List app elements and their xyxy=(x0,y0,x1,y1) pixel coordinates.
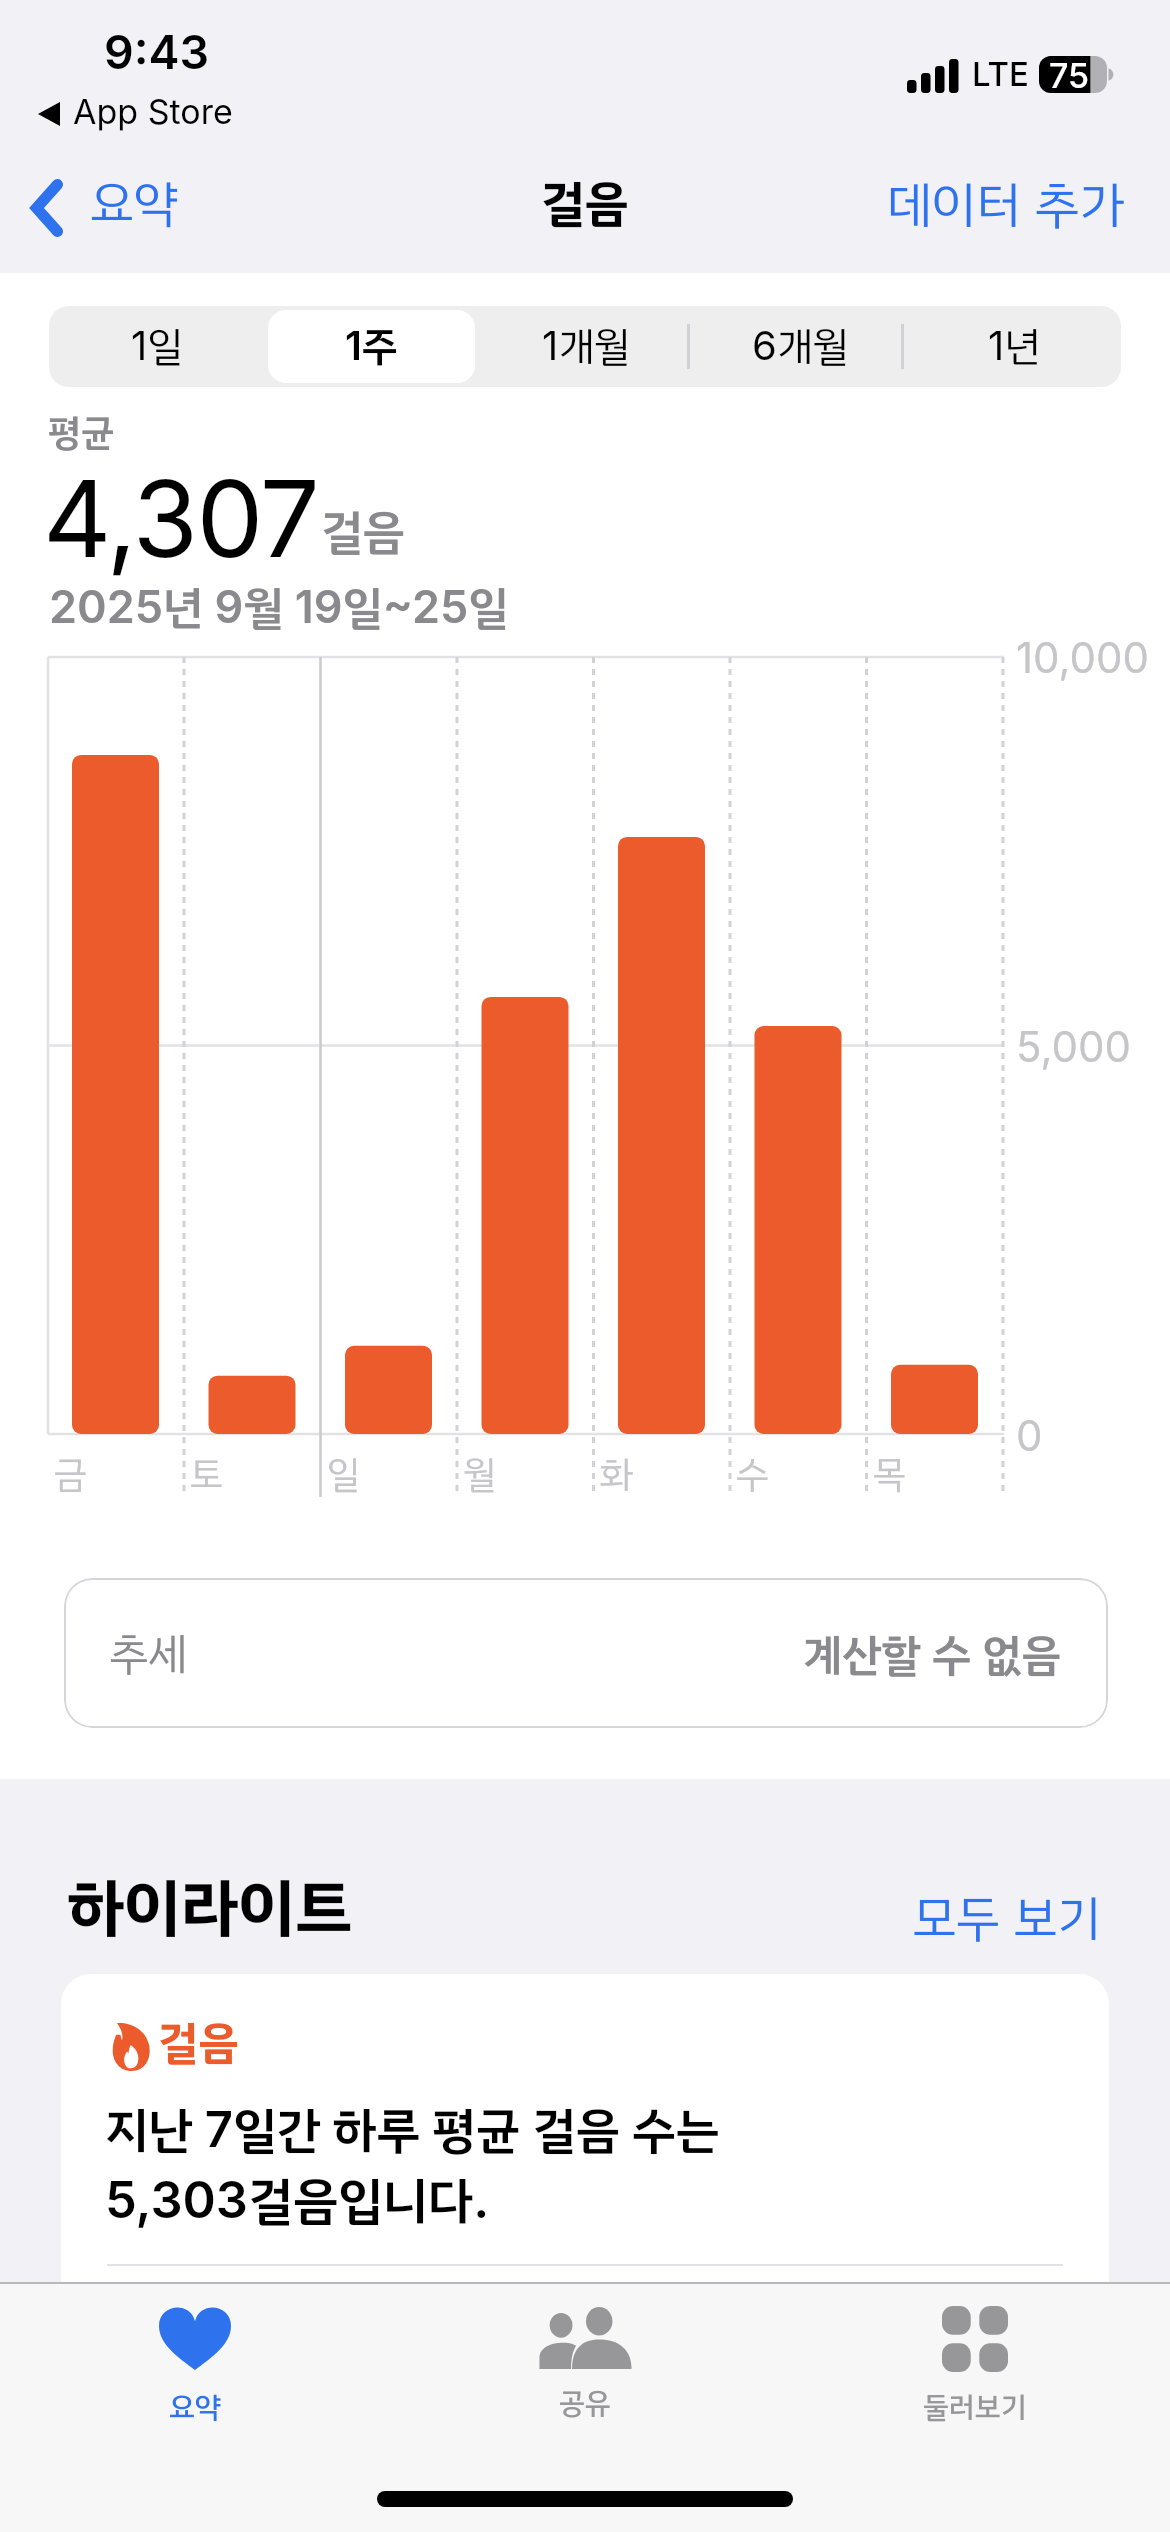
staticText: 10,000 xyxy=(1016,632,1150,683)
staticText: 계산할 수 없음 xyxy=(803,1622,1061,1688)
staticText: 지난 7일간 하루 평균 걸음 수는 xyxy=(105,2094,720,2168)
staticText: 일 xyxy=(327,1447,361,1503)
button[interactable]: 1년 xyxy=(907,306,1121,387)
staticText: 9:43 xyxy=(104,24,210,80)
staticText: 월 xyxy=(463,1447,497,1503)
button[interactable]: 6개월 xyxy=(693,306,907,387)
staticText: 둘러보기 xyxy=(923,2386,1027,2430)
staticText: 하이라이트 xyxy=(67,1861,353,1957)
staticText: App Store xyxy=(73,91,233,132)
other: 둘러보기 xyxy=(942,2306,1008,2372)
staticText: 걸음 xyxy=(321,497,405,568)
staticText: 추세 xyxy=(109,1621,188,1687)
staticText: 1일 xyxy=(131,317,183,377)
button[interactable]: 공유 xyxy=(390,2282,780,2452)
staticText: 모두 보기 xyxy=(857,1882,1101,1956)
staticText: 토 xyxy=(190,1447,224,1503)
staticText: 평균 xyxy=(48,405,115,461)
button[interactable]: 1개월 xyxy=(479,306,693,387)
staticText: 화 xyxy=(600,1447,634,1503)
staticText: 목 xyxy=(873,1447,907,1503)
staticText: 금 xyxy=(54,1447,88,1503)
staticText: 1개월 xyxy=(542,317,630,377)
button[interactable]: 요약 xyxy=(30,171,178,245)
button[interactable]: 추세 xyxy=(64,1578,1108,1728)
staticText: 4,307 xyxy=(43,454,319,582)
staticText: 1주 xyxy=(345,317,398,377)
button[interactable]: 둘러보기 xyxy=(780,2282,1170,2452)
staticText: 공유 xyxy=(559,2382,611,2426)
staticText: 1년 xyxy=(988,317,1040,377)
other: 공유 xyxy=(539,2307,632,2369)
staticText: 요약 xyxy=(90,167,178,241)
staticText: 5,000 xyxy=(1016,1021,1131,1072)
staticText: 6개월 xyxy=(752,317,849,377)
other: 요약 xyxy=(159,2304,231,2370)
button[interactable]: 1주 xyxy=(264,306,479,387)
staticText: 수 xyxy=(736,1447,770,1503)
staticText: 요약 xyxy=(169,2386,221,2430)
button[interactable]: 요약 xyxy=(0,2282,390,2452)
staticText: 2025년 9월 19일~25일 xyxy=(49,574,509,642)
staticText: 걸음 xyxy=(541,167,629,241)
staticText: 걸음 xyxy=(158,2009,239,2077)
button[interactable]: 걸음 xyxy=(61,1974,1109,2284)
staticText: LTE xyxy=(972,54,1029,94)
button[interactable]: 1일 xyxy=(49,306,264,387)
staticText: 데이터 추가 xyxy=(887,168,1125,243)
staticText: 5,303걸음입니다. xyxy=(105,2163,490,2239)
staticText: 0 xyxy=(1016,1410,1043,1461)
button[interactable]: 모두 보기 xyxy=(857,1882,1101,1956)
button[interactable]: 데이터 추가 xyxy=(887,168,1125,243)
staticText: 75 xyxy=(1049,55,1090,92)
